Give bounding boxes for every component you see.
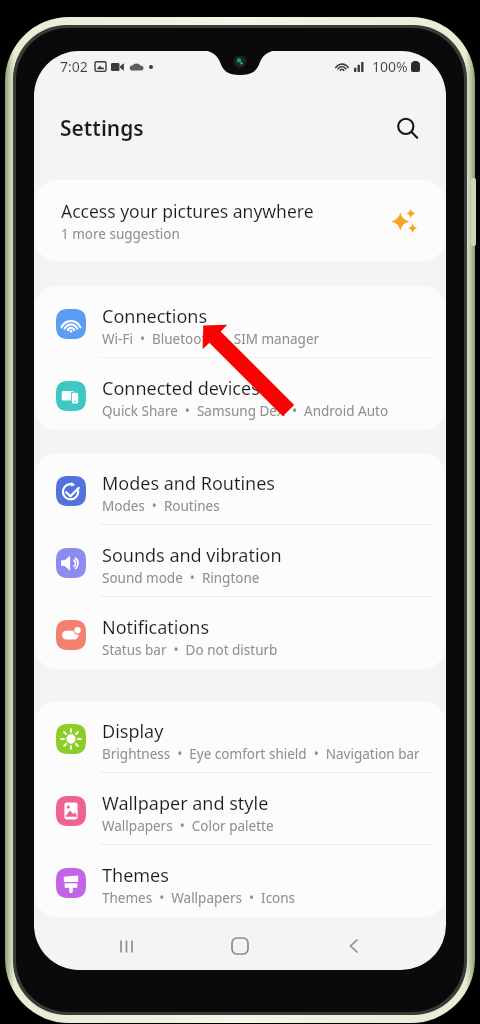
staticText: 100% — [372, 57, 408, 76]
button[interactable]: Back — [336, 928, 372, 964]
button[interactable]: Modes and Routines — [35, 453, 445, 525]
staticText: Wallpaper and style — [102, 791, 269, 816]
button[interactable]: Notifications — [35, 597, 445, 669]
staticText: Wallpapers • Color palette — [102, 817, 274, 835]
staticText: Quick Share • Samsung DeX • Android Auto — [102, 402, 389, 420]
staticText: 1 more suggestion — [61, 225, 180, 243]
button[interactable]: Search — [388, 109, 428, 149]
staticText: Sounds and vibration — [102, 543, 282, 568]
staticText: Status bar • Do not disturb — [102, 641, 278, 659]
staticText: Access your pictures anywhere — [61, 199, 314, 223]
staticText: Brightness • Eye comfort shield • Naviga… — [102, 745, 420, 763]
button[interactable]: Connected devices — [35, 358, 445, 430]
button[interactable]: Display — [35, 701, 445, 773]
staticText: Sound mode • Ringtone — [102, 569, 260, 587]
staticText: Themes — [102, 863, 169, 888]
staticText: 7:02 — [60, 57, 88, 76]
staticText: Connected devices — [102, 376, 260, 401]
staticText: Connections — [102, 304, 208, 329]
button[interactable]: Connections — [35, 286, 445, 358]
staticText: Display — [102, 719, 164, 744]
staticText: Settings — [60, 114, 144, 143]
staticText: Wi-Fi • Bluetooth • SIM manager — [102, 330, 320, 348]
button[interactable]: Access your pictures anywhere — [35, 180, 445, 261]
button[interactable]: Wallpaper and style — [35, 773, 445, 845]
staticText: Modes • Routines — [102, 497, 220, 515]
staticText: Modes and Routines — [102, 471, 275, 496]
button[interactable]: Themes — [35, 845, 445, 917]
staticText: Themes • Wallpapers • Icons — [102, 889, 296, 907]
button[interactable]: Recent apps — [108, 928, 144, 964]
staticText: Notifications — [102, 615, 210, 640]
button[interactable]: Sounds and vibration — [35, 525, 445, 597]
button[interactable]: Home — [221, 927, 259, 965]
